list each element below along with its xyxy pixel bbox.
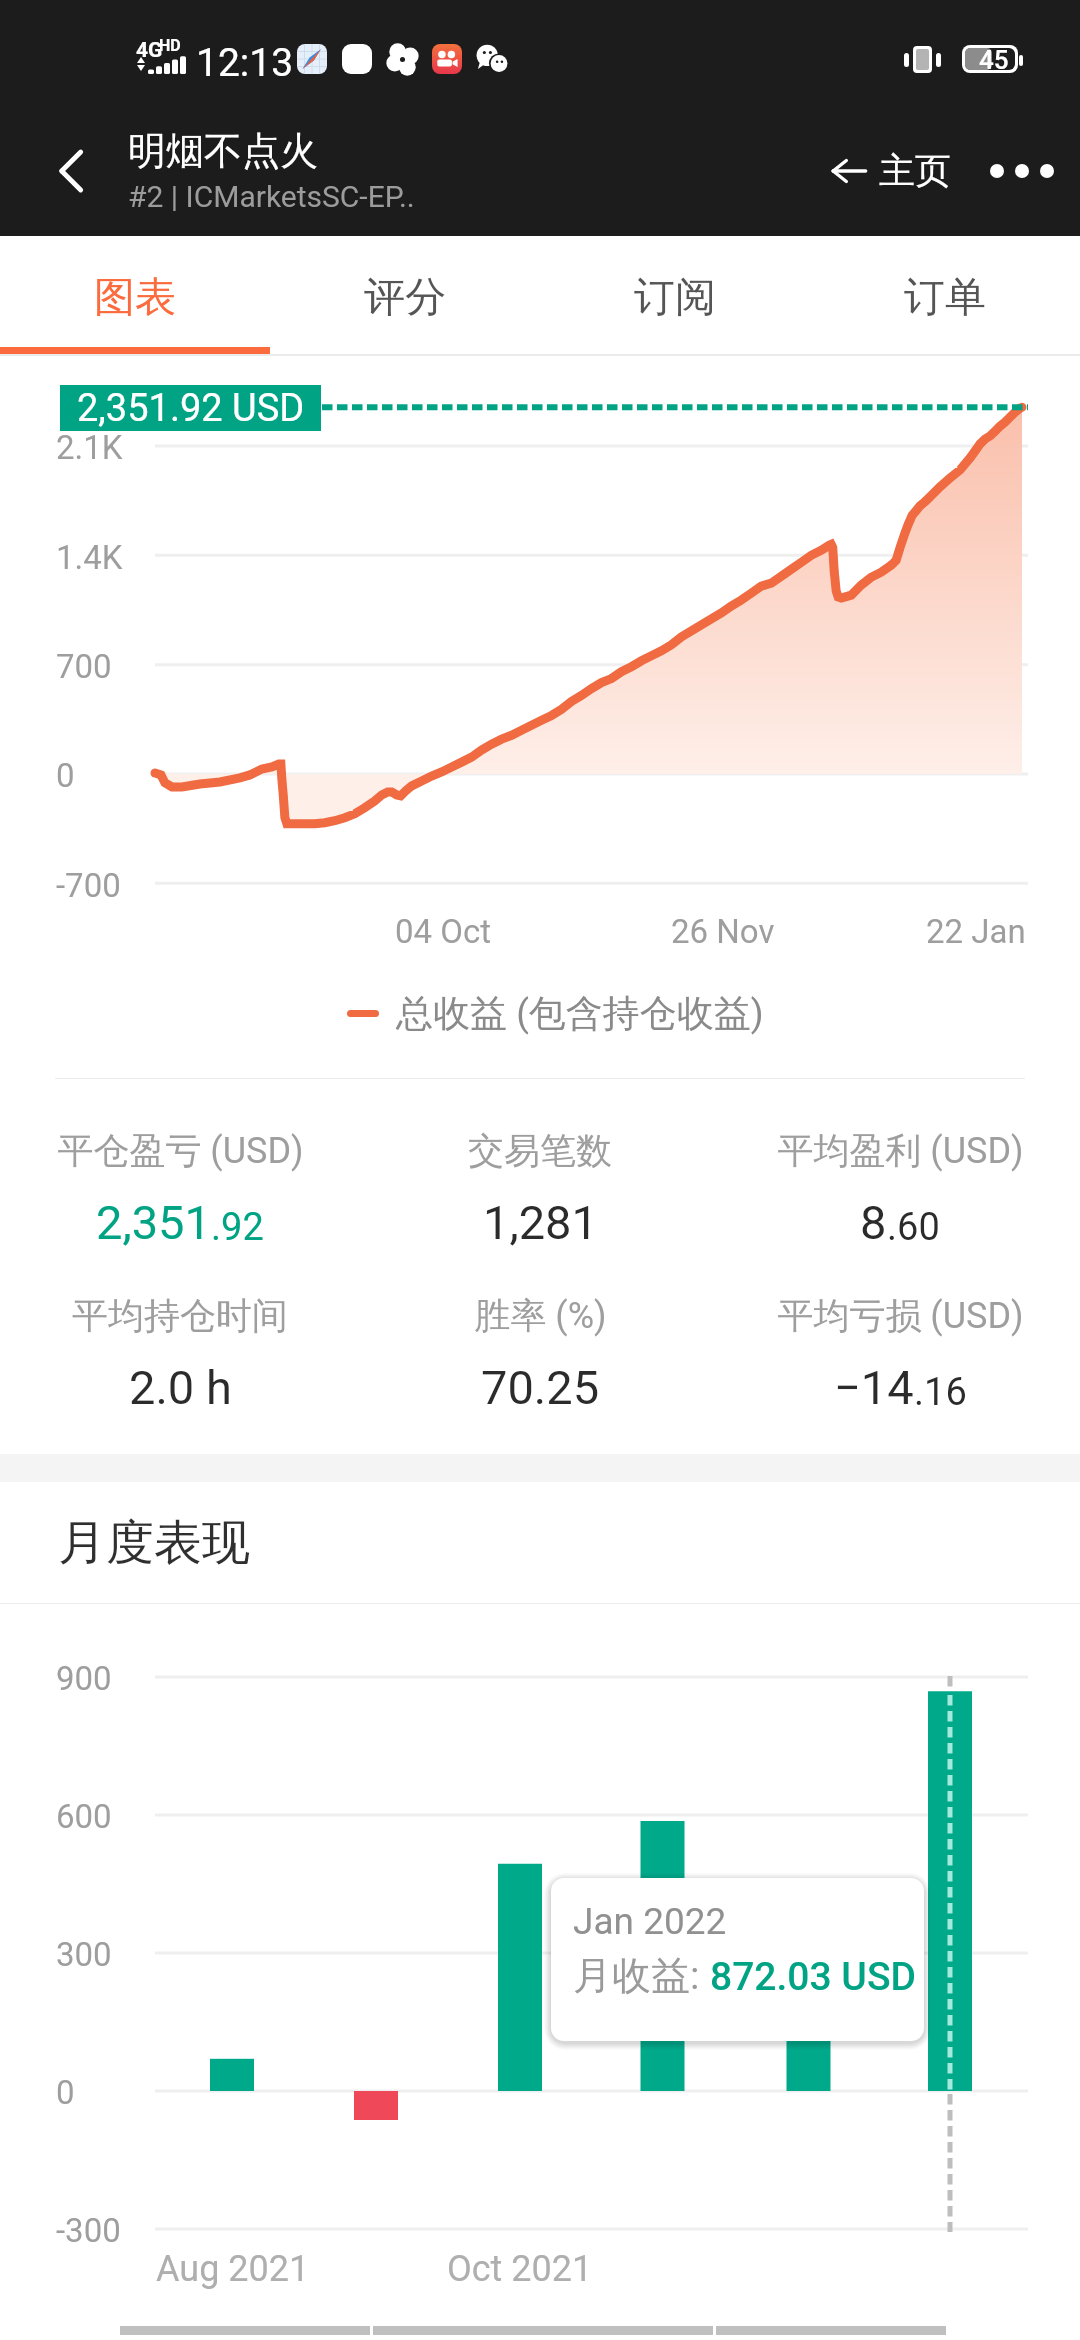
staticText: 平均持仓时间 [72, 1293, 288, 1338]
staticText: HD [159, 36, 181, 55]
staticText: 4G [136, 38, 163, 63]
staticText: 45 [979, 45, 1009, 73]
staticText: 平仓盈亏 (USD) [57, 1128, 304, 1173]
staticText: 0 [56, 2073, 75, 2112]
staticText: 2,351 [96, 1195, 211, 1250]
staticText: 图表 [94, 272, 176, 324]
button[interactable]: 主页 [815, 138, 963, 203]
staticText: 1.4K [56, 538, 123, 577]
staticText: -300 [56, 2211, 121, 2250]
button[interactable]: 评分 [270, 236, 540, 360]
staticText: .60 [887, 1205, 940, 1250]
staticText: 22 Jan [926, 912, 1026, 951]
staticText: 12:13 [196, 40, 294, 86]
staticText: 胜率 (%) [474, 1293, 607, 1338]
staticText: Oct 2021 [447, 2248, 593, 2290]
staticText: 900 [56, 1659, 112, 1698]
button[interactable]: 胜率 (%) [360, 1291, 720, 1456]
staticText: 700 [56, 647, 112, 686]
staticText: #2 | ICMarketsSC-EP.. [128, 179, 415, 214]
staticText: 月度表现 [58, 1513, 250, 1573]
staticText: 明烟不点火 [128, 127, 318, 175]
button[interactable]: 订阅 [540, 236, 810, 360]
staticText: 订单 [904, 272, 986, 324]
staticText: 1,281 [483, 1195, 598, 1250]
staticText: .92 [211, 1205, 264, 1250]
button[interactable]: 平均持仓时间 [0, 1291, 360, 1456]
staticText: −14 [834, 1360, 914, 1415]
staticText: 总收益 (包含持仓收益) [396, 990, 764, 1037]
staticText: 月收益: [573, 1951, 710, 2000]
staticText: 评分 [364, 272, 446, 324]
staticText: -700 [56, 866, 121, 905]
button[interactable]: 订单 [810, 236, 1080, 360]
button[interactable]: 平仓盈亏 (USD) [0, 1126, 360, 1291]
staticText: 04 Oct [395, 912, 492, 951]
staticText: 26 Nov [671, 912, 775, 951]
button[interactable]: Back [20, 118, 128, 223]
button[interactable]: 交易笔数 [360, 1126, 720, 1291]
staticText: 0 [56, 756, 75, 795]
staticText: 平均盈利 (USD) [777, 1128, 1024, 1173]
staticText: 订阅 [634, 272, 716, 324]
button[interactable]: More options [969, 118, 1074, 223]
staticText: 600 [56, 1797, 112, 1836]
button[interactable]: 平均亏损 (USD) [720, 1291, 1080, 1456]
button[interactable]: 图表 [0, 236, 270, 360]
staticText: 8 [860, 1195, 887, 1250]
staticText: 2,351.92 USD [77, 386, 305, 431]
staticText: 平均亏损 (USD) [777, 1293, 1024, 1338]
staticText: 主页 [879, 148, 951, 193]
staticText: 70.25 [481, 1360, 600, 1415]
staticText: 2.0 h [129, 1360, 232, 1415]
button[interactable]: 平均盈利 (USD) [720, 1126, 1080, 1291]
staticText: .16 [914, 1370, 967, 1415]
staticText: 300 [56, 1935, 112, 1974]
staticText: 交易笔数 [468, 1128, 612, 1173]
staticText: 872.03 USD [710, 1954, 916, 2000]
staticText: 2.1K [56, 428, 123, 467]
staticText: Aug 2021 [156, 2248, 310, 2290]
staticText: Jan 2022 [573, 1900, 727, 1943]
